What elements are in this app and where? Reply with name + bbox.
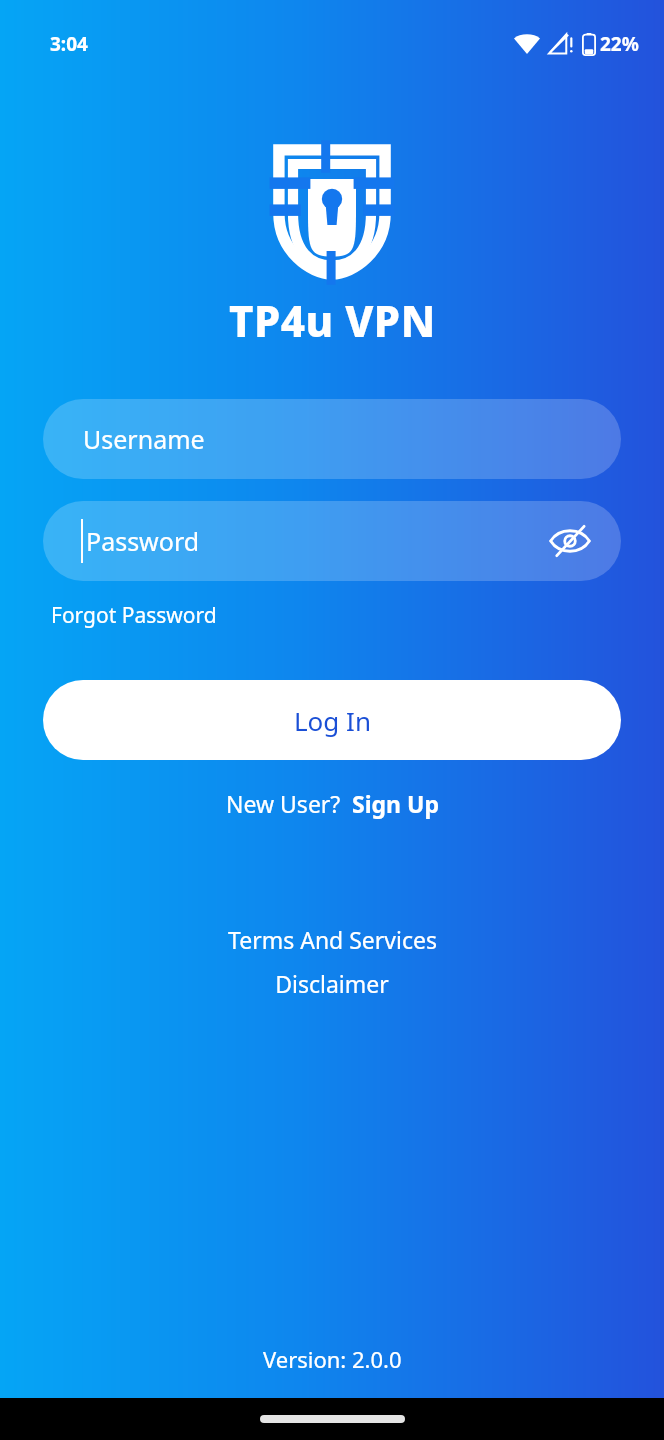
staticText: Sign Up <box>352 788 439 819</box>
button[interactable]: Show password <box>547 518 593 564</box>
staticText: New User? <box>226 788 341 819</box>
staticText: Forgot Password <box>51 601 217 630</box>
button[interactable]: Sign Up <box>352 788 439 819</box>
staticText: TP4u VPN <box>229 292 436 349</box>
button[interactable]: Password <box>43 501 621 581</box>
button[interactable]: Username <box>43 399 621 479</box>
staticText: Password <box>86 524 200 558</box>
staticText: Version: 2.0.0 <box>263 1344 402 1374</box>
button[interactable]: Terms And Services <box>228 924 437 955</box>
staticText: Log In <box>294 703 371 738</box>
staticText: Username <box>83 422 205 456</box>
button[interactable]: Disclaimer <box>275 968 389 999</box>
staticText: Terms And Services <box>228 924 437 955</box>
button[interactable]: Log In <box>43 680 621 760</box>
button[interactable]: Forgot Password <box>51 601 217 630</box>
staticText: 3:04 <box>50 31 88 57</box>
staticText: Disclaimer <box>275 968 389 999</box>
staticText: 22% <box>600 31 639 57</box>
